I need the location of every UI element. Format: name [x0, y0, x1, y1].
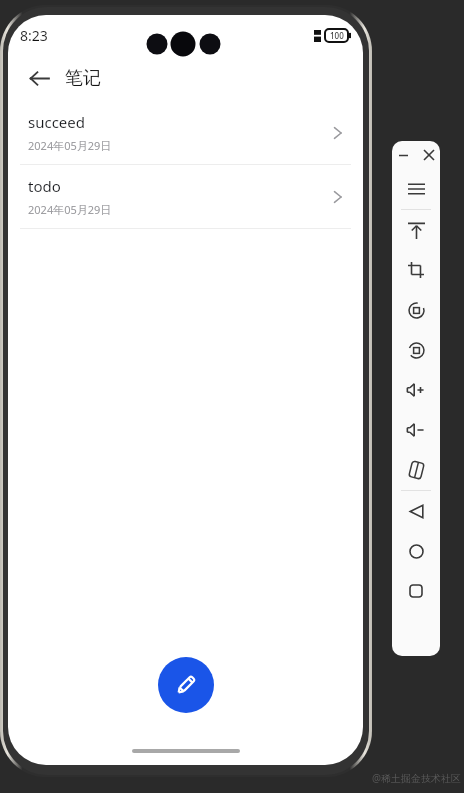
- staticText: 2024年05月29日: [28, 138, 112, 153]
- button[interactable]: Recents: [392, 571, 440, 611]
- button[interactable]: Volume down: [392, 410, 440, 450]
- button[interactable]: Minimize: [395, 147, 411, 163]
- button[interactable]: Volume up: [392, 370, 440, 410]
- button[interactable]: Menu: [392, 169, 440, 209]
- button[interactable]: Rotate right: [392, 330, 440, 370]
- button[interactable]: Fold: [392, 450, 440, 490]
- button[interactable]: Screenshot: [392, 250, 440, 290]
- staticText: 100: [330, 30, 344, 41]
- button[interactable]: New note: [158, 657, 214, 713]
- button[interactable]: Power: [392, 210, 440, 250]
- staticText: 8:23: [20, 26, 48, 45]
- button[interactable]: Back: [392, 491, 440, 531]
- button[interactable]: succeed: [8, 101, 363, 164]
- staticText: 笔记: [65, 67, 101, 90]
- staticText: todo: [28, 176, 61, 196]
- button[interactable]: Close: [421, 147, 437, 163]
- staticText: @稀土掘金技术社区: [372, 771, 461, 785]
- staticText: 2024年05月29日: [28, 202, 112, 217]
- button[interactable]: Back: [24, 63, 54, 93]
- button[interactable]: todo: [8, 165, 363, 228]
- staticText: succeed: [28, 112, 86, 132]
- button[interactable]: Rotate left: [392, 290, 440, 330]
- button[interactable]: Home: [392, 531, 440, 571]
